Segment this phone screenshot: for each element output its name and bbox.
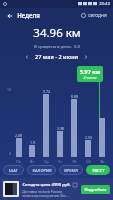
staticText: 2.88 [15,133,22,138]
staticText: Пн [16,159,21,164]
staticText: ШАГ [9,168,18,173]
button[interactable]: Следующая неделя [81,52,91,62]
button[interactable]: ШАГ [3,165,24,175]
button[interactable]: 5.97 км [77,66,103,82]
staticText: Чт [58,159,62,164]
staticText: ВРЕМЯ [64,168,78,173]
staticText: Ср [44,159,49,164]
button[interactable]: 2.88 [12,83,25,165]
button[interactable]: Назад [4,10,15,21]
button[interactable]: 3.98 [53,83,67,165]
staticText: Доставка по всей России, [22,189,63,193]
staticText: Пт [72,159,77,164]
button[interactable]: 8.88 [67,83,81,165]
button[interactable]: Вс [95,83,109,165]
staticText: РАССТ [92,168,105,173]
button[interactable]: РАССТ [86,165,110,175]
button[interactable]: 9.74 [39,83,53,165]
button[interactable]: КАЛОРИЯ [27,165,56,175]
staticText: Сегодня цена 4990 руб. [22,182,71,188]
button[interactable]: Подробнее [81,185,110,194]
staticText: 1.9 [30,140,35,145]
button[interactable]: Сегодня цена 4990 руб. [0,178,113,200]
staticText: 27 мая - 2 июня [35,53,78,61]
button[interactable]: сегодня [79,11,109,20]
button[interactable]: ВРЕМЯ [59,165,83,175]
staticText: В среднем в день: 5.0 [34,43,80,49]
staticText: оплата при получении. Бес… [22,193,69,197]
staticText: 34.96 км [33,25,81,41]
staticText: 3.98 [57,126,64,131]
staticText: Сб [86,159,91,164]
staticText: 2 июня [83,75,97,80]
staticText: Вс [100,159,105,164]
staticText: Неделя [17,11,40,19]
staticText: 9.74 [43,89,50,94]
staticText: Вт [30,159,34,164]
button[interactable]: Предыдущая неделя [22,52,32,62]
button[interactable]: 1.9 [25,83,39,165]
button[interactable]: 2.59 [81,83,95,165]
staticText: 8.88 [71,94,78,99]
staticText: Подробнее [84,187,107,192]
staticText: 10 [7,87,11,92]
staticText: 5.97 км [80,68,100,75]
staticText: сегодня [88,12,107,19]
staticText: 2.59 [85,135,92,140]
staticText: КАЛОРИЯ [32,168,52,173]
staticText: 23:43 [99,1,110,7]
staticText: 0 [9,151,11,156]
